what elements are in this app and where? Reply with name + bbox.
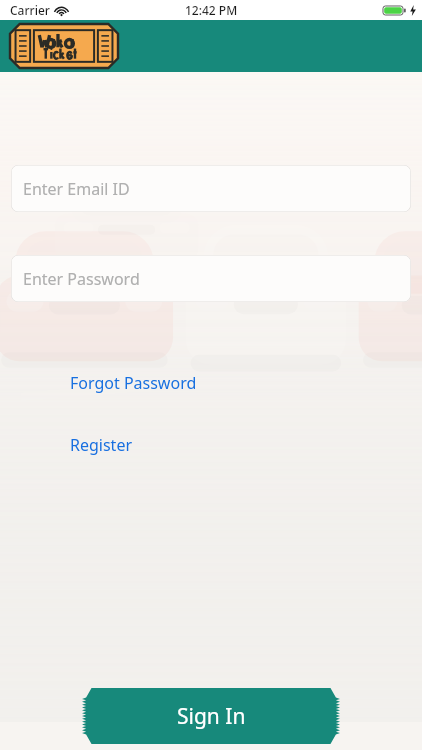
button[interactable]: Waka Ticket logo: [10, 24, 118, 68]
staticText: 12:42 PM: [185, 2, 238, 18]
button[interactable]: Enter Email ID: [11, 165, 411, 212]
staticText: Enter Password: [23, 268, 140, 290]
staticText: Carrier: [10, 2, 50, 18]
button[interactable]: Enter Password: [11, 255, 411, 302]
button[interactable]: Register: [70, 432, 133, 458]
button[interactable]: Sign In: [82, 688, 340, 744]
staticText: Forgot Password: [70, 372, 197, 394]
button[interactable]: Forgot Password: [70, 370, 197, 396]
staticText: Register: [70, 434, 133, 456]
staticText: Enter Email ID: [23, 178, 130, 200]
staticText: Sign In: [177, 702, 246, 731]
